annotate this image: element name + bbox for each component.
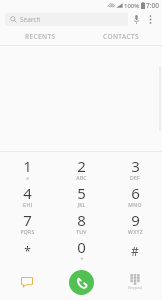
staticText: + xyxy=(80,256,84,263)
button[interactable]: 5 xyxy=(54,183,108,210)
button[interactable]: Call xyxy=(69,270,94,295)
button[interactable]: 2 xyxy=(54,155,108,183)
button[interactable]: 1 xyxy=(0,155,54,183)
staticText: MNO xyxy=(128,202,142,209)
staticText: CONTACTS xyxy=(103,32,140,41)
staticText: 7 xyxy=(23,210,32,230)
staticText: # xyxy=(131,243,139,259)
staticText: JKL xyxy=(77,202,86,209)
button[interactable]: More options xyxy=(144,12,157,27)
staticText: 2 xyxy=(77,156,86,176)
button[interactable]: Send message xyxy=(0,264,54,300)
staticText: 3 xyxy=(131,156,140,176)
staticText: * xyxy=(24,243,31,259)
button[interactable]: Voice search xyxy=(128,12,144,27)
button[interactable]: 9 xyxy=(108,210,162,237)
button[interactable]: 0 xyxy=(54,237,108,264)
button[interactable]: RECENTS xyxy=(0,28,81,45)
staticText: Search xyxy=(20,15,41,24)
button[interactable]: 8 xyxy=(54,210,108,237)
staticText: ABC xyxy=(76,175,87,182)
staticText: 6 xyxy=(131,183,140,203)
staticText: 8 xyxy=(77,210,86,230)
staticText: ∞ xyxy=(25,175,30,181)
staticText: Keypad xyxy=(128,285,142,290)
staticText: GHI xyxy=(22,202,33,209)
staticText: RECENTS xyxy=(25,32,56,41)
button[interactable]: CONTACTS xyxy=(81,28,162,45)
staticText: DEF xyxy=(130,175,140,182)
staticText: 5 xyxy=(77,183,86,203)
staticText: TUV xyxy=(76,229,87,236)
staticText: 1 xyxy=(23,156,32,176)
button[interactable]: Search xyxy=(5,13,128,26)
staticText: 4 xyxy=(23,183,32,203)
button[interactable]: 3 xyxy=(108,155,162,183)
staticText: PQRS xyxy=(20,229,35,236)
button[interactable]: 6 xyxy=(108,183,162,210)
button[interactable]: * xyxy=(0,237,54,264)
staticText: 0 xyxy=(77,237,86,257)
button[interactable]: # xyxy=(108,237,162,264)
staticText: 100% xyxy=(124,2,140,10)
staticText: WXYZ xyxy=(128,229,143,236)
button[interactable]: 7 xyxy=(0,210,54,237)
staticText: 9 xyxy=(131,210,140,230)
button[interactable]: 4 xyxy=(0,183,54,210)
staticText: 7:00 xyxy=(146,1,159,10)
button[interactable]: Keypad xyxy=(108,264,162,300)
